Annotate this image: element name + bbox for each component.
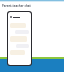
staticText: Parent-teacher chat xyxy=(2,4,31,8)
